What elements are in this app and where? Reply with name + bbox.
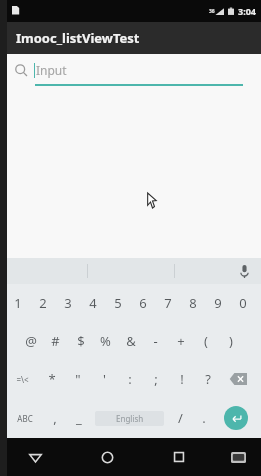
button[interactable]: * xyxy=(39,360,65,398)
staticText: 8 xyxy=(189,294,197,312)
staticText: . xyxy=(202,409,206,427)
button[interactable]: _ xyxy=(67,398,91,438)
staticText: ; xyxy=(154,370,158,388)
button[interactable]: " xyxy=(65,360,91,398)
staticText: 2 xyxy=(39,294,47,312)
staticText: * xyxy=(48,370,56,388)
button[interactable]: 6 xyxy=(130,284,155,322)
button[interactable]: % xyxy=(93,322,118,360)
button[interactable]: 8 xyxy=(180,284,205,322)
button[interactable]: Home xyxy=(71,438,143,476)
button[interactable]: Hide keyboard xyxy=(0,438,71,476)
button[interactable]: Search xyxy=(0,54,261,86)
button[interactable]: Imooc_listViewTest xyxy=(0,22,261,54)
staticText: ! xyxy=(180,370,184,388)
button[interactable]: @ xyxy=(18,322,43,360)
button[interactable]: ! xyxy=(169,360,195,398)
button[interactable]: ) xyxy=(218,322,243,360)
button[interactable]: ' xyxy=(91,360,117,398)
staticText: % xyxy=(100,332,111,350)
staticText: 3:04 xyxy=(238,5,256,17)
button[interactable]: 0 xyxy=(230,284,255,322)
button[interactable]: # xyxy=(43,322,68,360)
staticText: 4 xyxy=(89,294,97,312)
staticText: 36 xyxy=(209,8,215,15)
staticText: ( xyxy=(204,332,208,350)
button[interactable]: ( xyxy=(193,322,218,360)
button[interactable]: 7 xyxy=(155,284,180,322)
staticText: 9 xyxy=(214,294,222,312)
button[interactable]: 9 xyxy=(205,284,230,322)
staticText: # xyxy=(51,332,60,350)
staticText: ) xyxy=(229,332,233,350)
button[interactable]: , xyxy=(43,398,67,438)
staticText: + xyxy=(177,332,185,350)
button[interactable]: . xyxy=(192,398,216,438)
button[interactable]: ABC xyxy=(6,398,43,438)
other: Search xyxy=(15,64,28,77)
button[interactable]: - xyxy=(143,322,168,360)
button[interactable]: Backspace xyxy=(221,360,255,398)
staticText: , xyxy=(53,409,57,427)
staticText: 7 xyxy=(164,294,172,312)
staticText: _ xyxy=(76,409,82,427)
staticText: 5 xyxy=(114,294,122,312)
button[interactable]: 5 xyxy=(105,284,130,322)
staticText: - xyxy=(153,332,158,350)
staticText: English xyxy=(116,413,144,424)
button[interactable]: =\< xyxy=(6,360,39,398)
button[interactable]: 1 xyxy=(6,284,30,322)
staticText: 0 xyxy=(239,294,247,312)
staticText: =\< xyxy=(16,374,29,385)
staticText: ? xyxy=(205,370,211,388)
staticText: / xyxy=(178,409,183,427)
button[interactable]: + xyxy=(168,322,193,360)
button[interactable]: Switch keyboard xyxy=(215,438,261,476)
button[interactable]: English xyxy=(95,411,164,426)
staticText: ABC xyxy=(17,413,33,424)
button[interactable]: : xyxy=(117,360,143,398)
button[interactable]: Enter xyxy=(216,398,255,438)
button[interactable]: ? xyxy=(195,360,221,398)
button[interactable]: ; xyxy=(143,360,169,398)
button[interactable]: & xyxy=(118,322,143,360)
staticText: 1 xyxy=(14,294,22,312)
button[interactable]: 4 xyxy=(80,284,105,322)
staticText: " xyxy=(75,370,81,388)
staticText: 3 xyxy=(64,294,72,312)
staticText: @ xyxy=(25,332,37,350)
button[interactable]: / xyxy=(168,398,192,438)
staticText: 6 xyxy=(139,294,147,312)
staticText: : xyxy=(128,370,132,388)
other: Voice input xyxy=(240,265,249,278)
staticText: ' xyxy=(103,370,106,388)
staticText: Imooc_listViewTest xyxy=(16,29,140,47)
button[interactable]: Recents xyxy=(143,438,215,476)
button[interactable]: 3 xyxy=(55,284,80,322)
staticText: Input xyxy=(36,62,67,78)
staticText: & xyxy=(126,332,136,350)
staticText: $ xyxy=(77,332,85,350)
button[interactable]: $ xyxy=(68,322,93,360)
button[interactable]: 2 xyxy=(30,284,55,322)
